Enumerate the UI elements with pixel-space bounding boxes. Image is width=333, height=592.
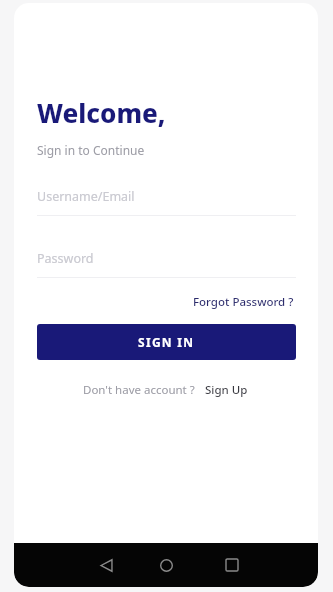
staticText: SIGN IN [138, 334, 195, 350]
staticText: Sign in to Continue [37, 142, 145, 158]
button[interactable]: Sign Up [204, 381, 249, 399]
staticText: Forgot Password ? [193, 294, 294, 310]
button[interactable]: SIGN IN [37, 324, 296, 360]
button[interactable]: Forgot Password ? [191, 292, 296, 312]
staticText: Sign Up [205, 382, 248, 398]
button[interactable]: Home [152, 551, 180, 579]
button[interactable]: Password [37, 250, 296, 278]
button[interactable]: Recent apps [218, 551, 246, 579]
staticText: Welcome, [37, 95, 166, 130]
staticText: Don't have account ? [83, 382, 195, 398]
staticText: Password [37, 250, 94, 267]
button[interactable]: Username/Email [37, 188, 296, 216]
staticText: Username/Email [37, 188, 135, 205]
button[interactable]: Back [92, 551, 120, 579]
